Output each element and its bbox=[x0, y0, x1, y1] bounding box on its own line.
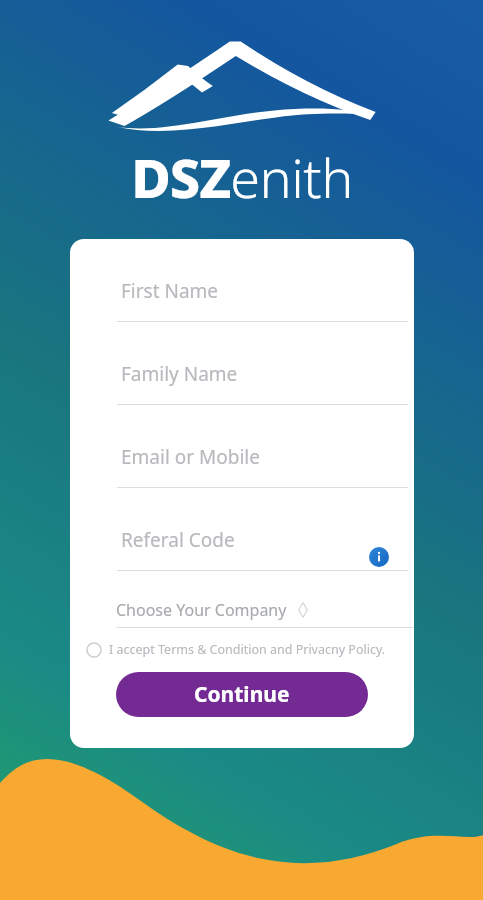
staticText: I accept Terms & Condition and Privacny … bbox=[109, 641, 386, 658]
button[interactable]: Continue bbox=[116, 672, 368, 717]
staticText: Continue bbox=[194, 680, 290, 709]
button[interactable]: First Name bbox=[70, 261, 414, 344]
button[interactable]: Email or Mobile bbox=[70, 427, 414, 510]
button[interactable]: Choose Your Company bbox=[70, 593, 414, 628]
staticText: Email or Mobile bbox=[121, 444, 260, 470]
button[interactable]: I accept Terms & Condition and Privacny … bbox=[86, 641, 406, 658]
staticText: Referal Code bbox=[121, 527, 235, 553]
staticText: DSZenith bbox=[131, 140, 353, 214]
button[interactable]: Referral code info bbox=[369, 547, 389, 567]
staticText: Family Name bbox=[121, 361, 238, 387]
staticText: Choose Your Company bbox=[116, 599, 287, 621]
button[interactable]: Family Name bbox=[70, 344, 414, 427]
button[interactable]: Referal Code bbox=[70, 510, 414, 593]
staticText: First Name bbox=[121, 278, 219, 304]
